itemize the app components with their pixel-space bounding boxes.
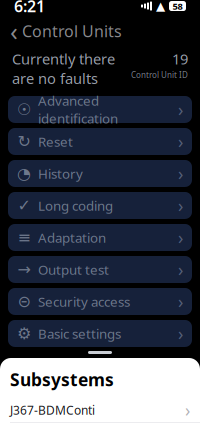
staticText: › (178, 162, 183, 185)
staticText: ⚙ (17, 324, 31, 343)
staticText: › (178, 322, 183, 345)
staticText: › (185, 398, 190, 421)
staticText: Reset (38, 133, 73, 150)
staticText: ✓ (17, 196, 30, 215)
staticText: Currently there are no faults (12, 49, 115, 88)
staticText: Advanced identification (38, 92, 118, 127)
staticText: History (38, 165, 83, 182)
staticText: ≡ (17, 228, 30, 247)
staticText: 58 (172, 0, 182, 12)
button[interactable]: ‹ (0, 10, 132, 52)
staticText: Adaptation (38, 229, 106, 246)
button[interactable]: ✓ (8, 192, 192, 219)
staticText: ◔ (17, 164, 31, 183)
staticText: ⊝ (17, 292, 30, 311)
staticText: Basic settings (38, 325, 121, 342)
staticText: 6:21 (14, 0, 45, 17)
staticText: › (178, 258, 183, 281)
button[interactable]: J367-BDMConti (0, 400, 200, 420)
staticText: › (178, 98, 183, 121)
staticText: › (178, 290, 183, 313)
staticText: › (178, 130, 183, 153)
button[interactable]: ◔ (8, 160, 192, 187)
button[interactable]: ⊝ (8, 288, 192, 315)
staticText: → (17, 260, 30, 279)
staticText: Control Units (22, 20, 122, 42)
staticText: Subsystems (10, 368, 114, 391)
button[interactable]: ☉ (8, 96, 192, 123)
staticText: Long coding (38, 197, 113, 214)
staticText: Output test (38, 261, 109, 278)
staticText: ‹ (10, 14, 18, 48)
staticText: J367-BDMConti (10, 402, 95, 418)
button[interactable]: → (8, 256, 192, 283)
staticText: Security access (38, 293, 130, 310)
button[interactable]: ↻ (8, 128, 192, 155)
staticText: ▲ (156, 0, 165, 13)
staticText: › (178, 226, 183, 249)
staticText: 19 (172, 49, 188, 68)
staticText: ↻ (17, 132, 30, 151)
staticText: Control Unit ID (131, 69, 188, 80)
button[interactable]: ⚙ (8, 320, 192, 347)
staticText: ☉ (17, 100, 31, 119)
staticText: › (178, 194, 183, 217)
button[interactable]: ≡ (8, 224, 192, 251)
